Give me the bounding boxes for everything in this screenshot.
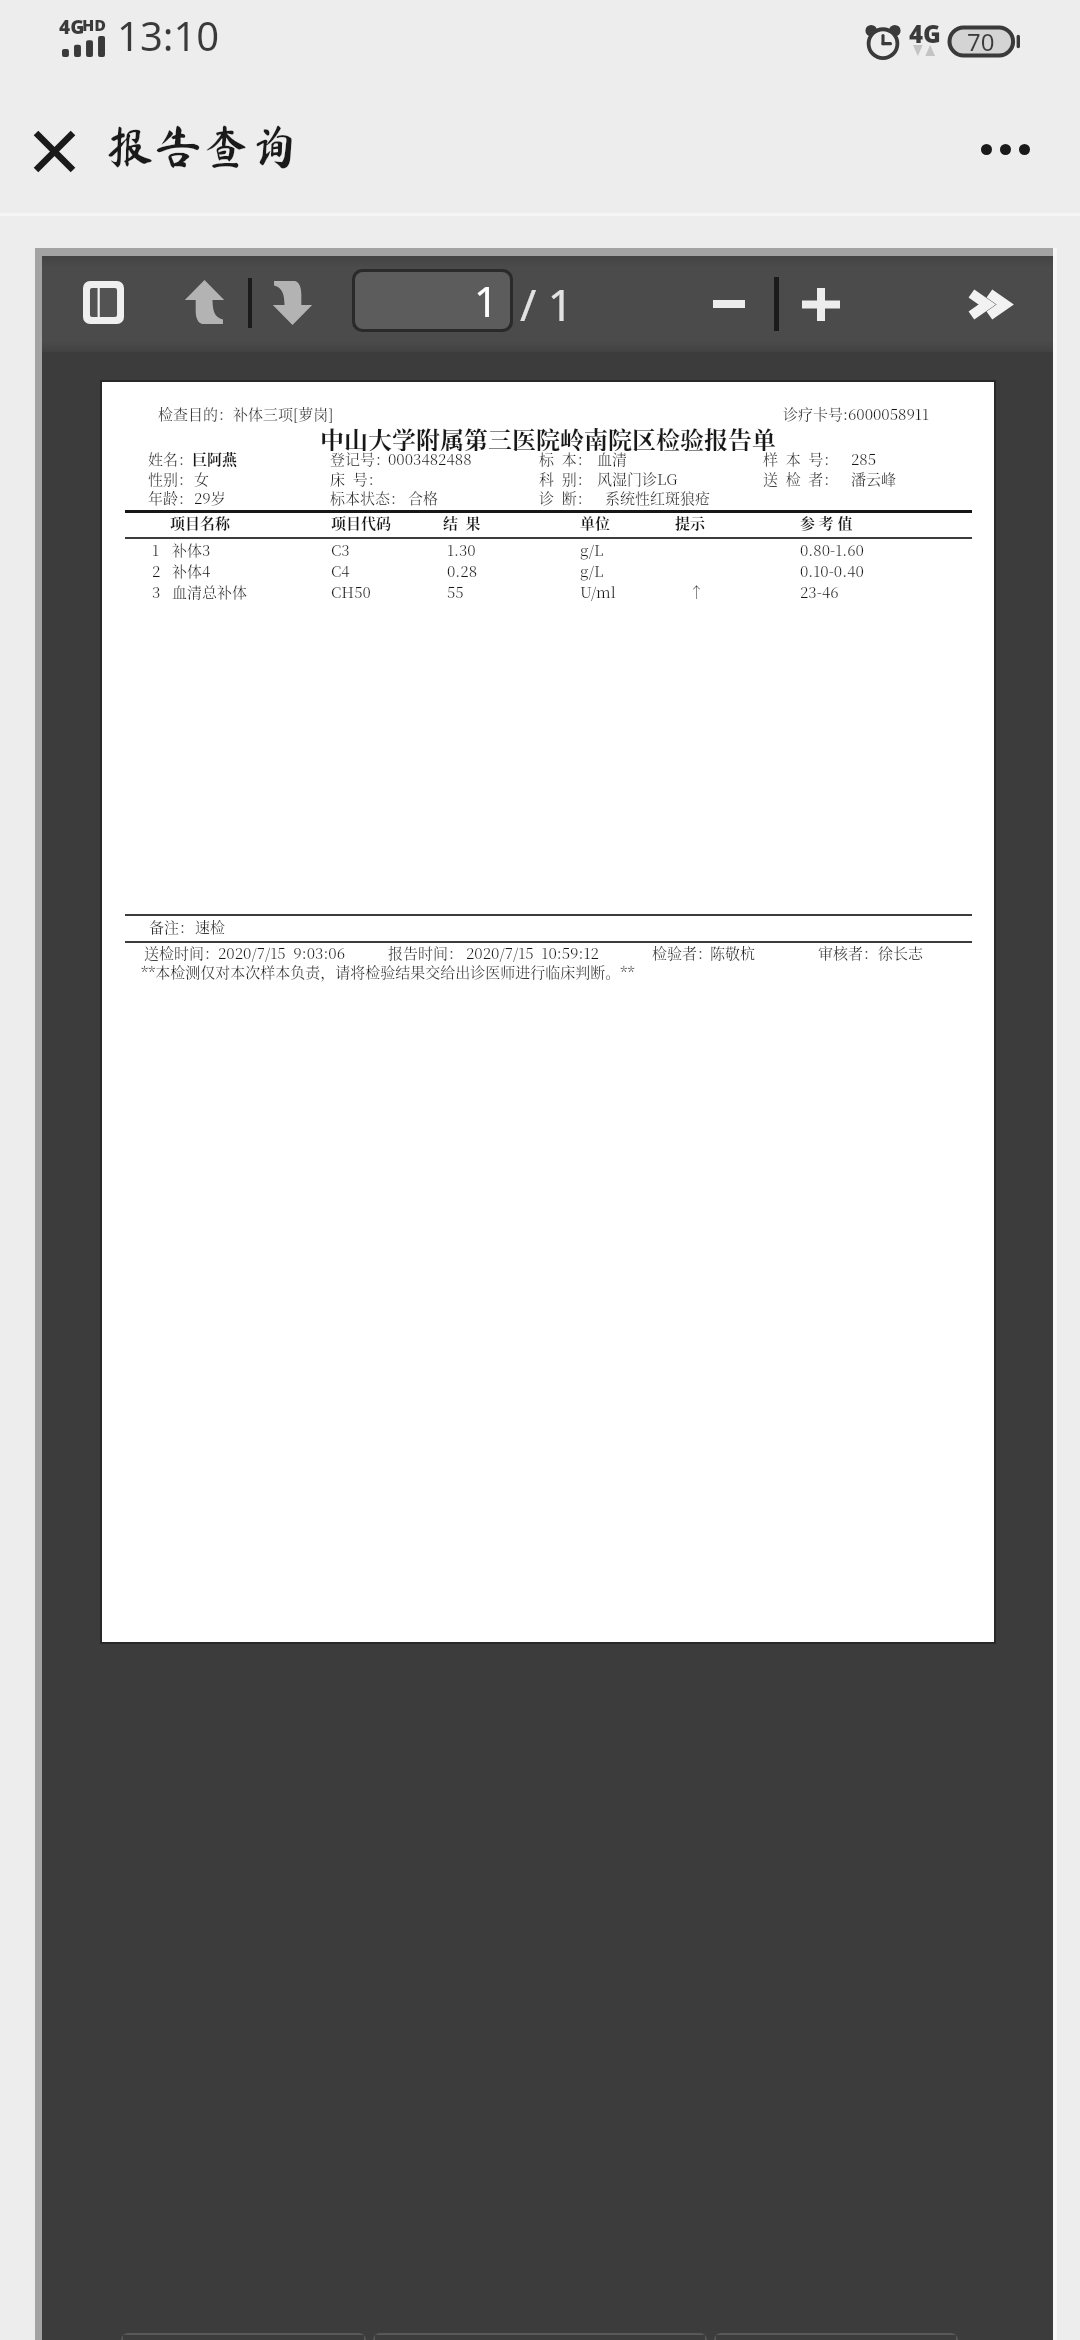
staticText: 诊疗卡号:6000058911 bbox=[783, 403, 929, 425]
button[interactable]: More tools bbox=[940, 266, 1036, 342]
staticText: 4G bbox=[909, 17, 941, 50]
staticText: 提示 bbox=[675, 512, 706, 534]
staticText: 合格 bbox=[408, 487, 439, 509]
staticText: 13:10 bbox=[117, 8, 220, 62]
staticText: 标 本： bbox=[539, 448, 592, 470]
staticText: 2020/7/15 10:59:12 bbox=[466, 942, 599, 964]
staticText: g/L bbox=[580, 560, 604, 582]
staticText: 项目名称 bbox=[170, 512, 231, 534]
staticText: 巨阿燕 bbox=[192, 448, 238, 470]
staticText: 血清总补体 bbox=[172, 581, 248, 603]
staticText: 2020/7/15 9:03:06 bbox=[218, 942, 346, 964]
button[interactable]: Close bbox=[12, 109, 97, 194]
staticText: / 1 bbox=[520, 274, 573, 322]
staticText: 23-46 bbox=[800, 581, 839, 603]
button[interactable]: Toggle sidebar bbox=[64, 263, 142, 341]
staticText: 1 bbox=[152, 539, 160, 561]
staticText: 姓名： bbox=[148, 448, 194, 470]
staticText: 诊 断： bbox=[539, 487, 592, 509]
staticText: 年龄： bbox=[148, 487, 194, 509]
staticText: ↑ bbox=[689, 581, 705, 603]
staticText: 0.10-0.40 bbox=[800, 560, 864, 582]
staticText: C3 bbox=[331, 539, 350, 561]
button[interactable]: Next page bbox=[261, 272, 323, 334]
staticText: 参 考 值 bbox=[800, 512, 853, 534]
staticText: 55 bbox=[447, 581, 464, 603]
staticText: 0003482488 bbox=[388, 448, 472, 470]
staticText: 报告时间： bbox=[388, 942, 464, 964]
staticText: 检验者： bbox=[652, 942, 713, 964]
staticText: 0.80-1.60 bbox=[800, 539, 864, 561]
staticText: 结 果 bbox=[443, 512, 481, 534]
staticText: 性别： bbox=[148, 468, 194, 490]
staticText: 29岁 bbox=[194, 487, 226, 509]
staticText: **本检测仅对本次样本负责，请将检验结果交给出诊医师进行临床判断。** bbox=[141, 961, 635, 983]
staticText: g/L bbox=[580, 539, 604, 561]
staticText: U/ml bbox=[580, 581, 616, 603]
staticText: 中山大学附属第三医院岭南院区检验报告单 bbox=[320, 421, 776, 451]
staticText: 检查目的：补体三项[萝岗] bbox=[158, 403, 334, 425]
staticText: 送检时间： bbox=[144, 942, 220, 964]
staticText: 审核者： bbox=[818, 942, 879, 964]
staticText: C4 bbox=[331, 560, 350, 582]
staticText: 徐长志 bbox=[878, 942, 924, 964]
staticText: 女 bbox=[194, 468, 210, 490]
staticText: 床 号： bbox=[330, 468, 383, 490]
staticText: 项目代码 bbox=[331, 512, 392, 534]
staticText: 系统性红斑狼疮 bbox=[605, 487, 711, 509]
button[interactable] bbox=[714, 2333, 958, 2340]
staticText: 速检 bbox=[195, 916, 226, 938]
staticText: 血清 bbox=[597, 448, 628, 470]
staticText: 登记号： bbox=[330, 448, 391, 470]
button[interactable] bbox=[121, 2333, 366, 2340]
staticText: CH50 bbox=[331, 581, 371, 603]
staticText: 备注： bbox=[149, 916, 195, 938]
button[interactable]: Zoom out bbox=[682, 266, 776, 342]
staticText: 1.30 bbox=[447, 539, 476, 561]
staticText: 0.28 bbox=[447, 560, 478, 582]
staticText: 标本状态： bbox=[330, 487, 406, 509]
staticText: 1 bbox=[474, 272, 499, 329]
staticText: 70 bbox=[967, 25, 995, 56]
staticText: 补体4 bbox=[172, 560, 211, 582]
button[interactable]: More options bbox=[955, 109, 1055, 189]
button[interactable]: Zoom in bbox=[774, 266, 868, 342]
staticText: 风湿门诊LG bbox=[597, 468, 678, 490]
staticText: 科 别： bbox=[539, 468, 592, 490]
button[interactable]: 1 bbox=[352, 269, 513, 332]
button[interactable]: Previous page bbox=[173, 271, 235, 333]
button[interactable] bbox=[373, 2333, 707, 2340]
staticText: 报告查询 bbox=[106, 122, 299, 170]
staticText: 送 检 者： bbox=[763, 468, 839, 490]
staticText: 潘云峰 bbox=[851, 468, 897, 490]
staticText: 285 bbox=[851, 448, 877, 470]
staticText: 样 本 号： bbox=[763, 448, 839, 470]
staticText: HD bbox=[82, 14, 107, 36]
staticText: 补体3 bbox=[172, 539, 211, 561]
staticText: 4G bbox=[59, 14, 85, 40]
staticText: 单位 bbox=[580, 512, 611, 534]
staticText: 3 bbox=[152, 581, 161, 603]
staticText: 2 bbox=[152, 560, 161, 582]
staticText: 陈敬杭 bbox=[710, 942, 756, 964]
